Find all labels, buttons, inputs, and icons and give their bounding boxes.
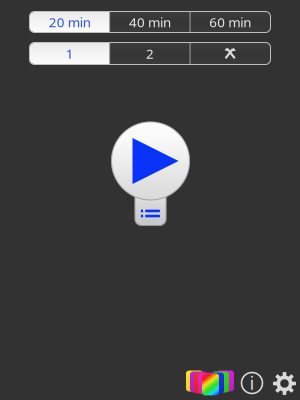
staticText: i <box>249 370 254 395</box>
button[interactable]: Settings <box>272 371 296 395</box>
button[interactable]: 1 <box>30 43 109 64</box>
button[interactable]: 2 <box>110 43 190 64</box>
button[interactable] <box>191 43 270 64</box>
button[interactable]: 40 min <box>110 12 190 32</box>
staticText: 1 <box>66 45 74 62</box>
staticText: 2 <box>146 45 154 62</box>
button[interactable]: Info <box>240 371 264 395</box>
button[interactable]: 60 min <box>191 12 270 32</box>
button[interactable]: Albums <box>186 370 234 396</box>
staticText: 60 min <box>209 13 251 31</box>
button[interactable]: 20 min <box>30 12 109 32</box>
button[interactable]: Play <box>110 121 190 227</box>
staticText: 40 min <box>129 13 171 31</box>
staticText: 20 min <box>49 13 91 31</box>
